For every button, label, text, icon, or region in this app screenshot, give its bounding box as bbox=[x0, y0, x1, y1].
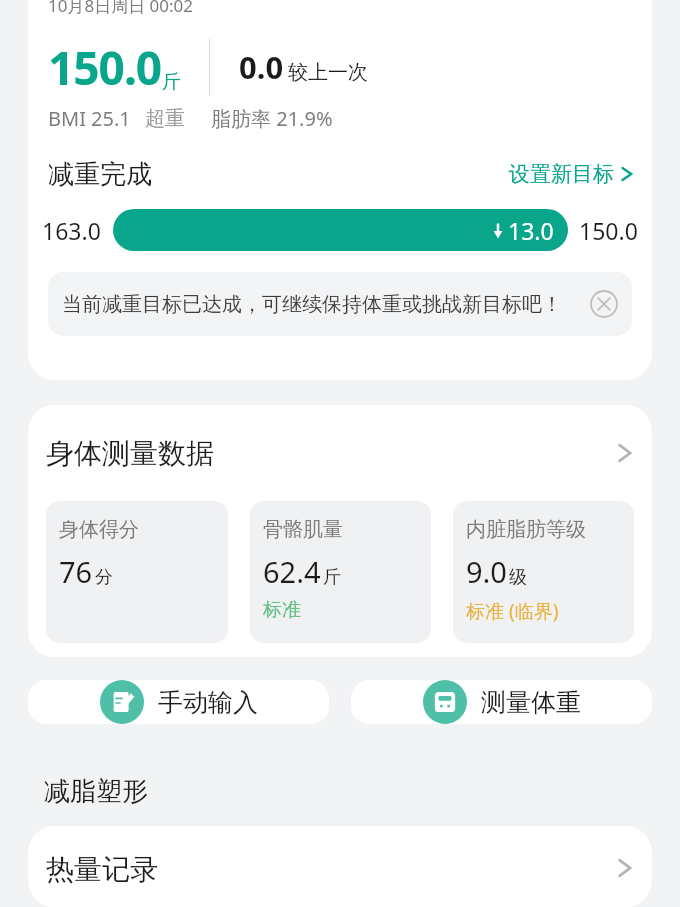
staticText: 身体测量数据 bbox=[46, 436, 214, 471]
button[interactable]: 内脏脂肪等级 bbox=[453, 501, 634, 643]
button[interactable]: 关闭 bbox=[588, 288, 620, 320]
staticText: 当前减重目标已达成，可继续保持体重或挑战新目标吧！ bbox=[62, 292, 562, 317]
button[interactable]: 设置新目标 bbox=[507, 159, 636, 189]
staticText: 设置新目标 bbox=[509, 161, 614, 187]
staticText: 163.0 bbox=[42, 215, 101, 246]
staticText: 9.0 bbox=[466, 552, 507, 591]
staticText: 标准 bbox=[263, 598, 301, 622]
staticText: 骨骼肌量 bbox=[263, 517, 343, 542]
staticText: 内脏脂肪等级 bbox=[466, 517, 586, 542]
staticText: 标准 (临界) bbox=[466, 598, 559, 624]
button[interactable]: 手动输入 bbox=[28, 680, 329, 724]
staticText: 斤 bbox=[323, 566, 341, 589]
staticText: 62.4 bbox=[263, 552, 321, 591]
staticText: 76 bbox=[59, 552, 93, 591]
staticText: 分 bbox=[95, 566, 113, 589]
staticText: 斤 bbox=[162, 70, 181, 94]
staticText: 手动输入 bbox=[158, 687, 258, 718]
staticText: 超重 bbox=[145, 106, 185, 131]
staticText: 0.0 bbox=[239, 46, 284, 88]
button[interactable]: 骨骼肌量 bbox=[250, 501, 431, 643]
staticText: 150.0 bbox=[579, 215, 638, 246]
staticText: 减脂塑形 bbox=[44, 775, 148, 808]
staticText: 热量记录 bbox=[46, 852, 158, 887]
staticText: BMI 25.1 bbox=[48, 105, 131, 132]
staticText: 150.0 bbox=[48, 36, 162, 99]
staticText: 身体得分 bbox=[59, 517, 139, 542]
button[interactable]: 身体测量数据 bbox=[28, 405, 652, 657]
button[interactable]: 身体得分 bbox=[46, 501, 228, 643]
staticText: 脂肪率 21.9% bbox=[211, 105, 333, 132]
button[interactable]: 热量记录 bbox=[28, 826, 652, 907]
staticText: 10月8日周日 00:02 bbox=[48, 0, 194, 17]
staticText: 较上一次 bbox=[288, 60, 368, 85]
staticText: 级 bbox=[509, 566, 527, 589]
button[interactable]: 测量体重 bbox=[351, 680, 652, 724]
staticText: 减重完成 bbox=[48, 158, 152, 191]
staticText: 测量体重 bbox=[481, 687, 581, 718]
staticText: 13.0 bbox=[508, 215, 554, 246]
